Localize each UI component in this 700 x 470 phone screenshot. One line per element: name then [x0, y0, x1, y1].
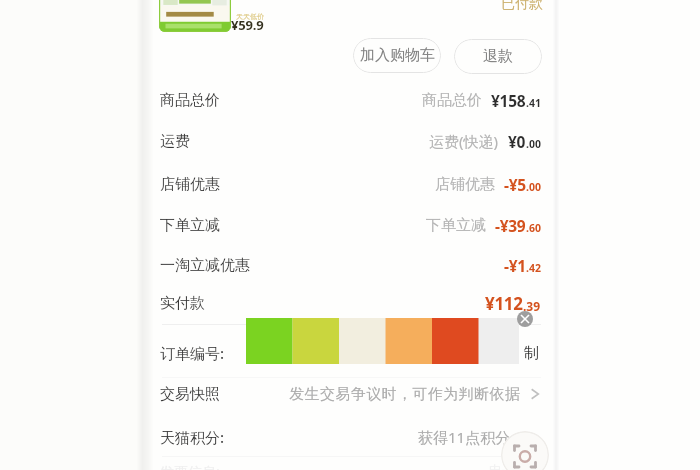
- staticText: 天猫积分:: [160, 427, 225, 447]
- staticText: -¥5: [504, 174, 526, 195]
- button[interactable]: 订单编号:: [160, 342, 541, 364]
- staticText: 订单编号:: [160, 343, 225, 363]
- staticText: 已付款: [501, 0, 543, 13]
- staticText: .42: [526, 261, 541, 275]
- staticText: 商品总价: [422, 91, 482, 110]
- staticText: 店铺优惠: [160, 175, 220, 194]
- button[interactable]: 下单立减: [160, 213, 541, 237]
- staticText: 发票信息:: [160, 462, 220, 470]
- staticText: ¥112: [485, 292, 523, 315]
- staticText: 交易快照: [160, 385, 220, 404]
- button[interactable]: 一淘立减优惠: [160, 253, 541, 277]
- button[interactable]: 商品总价: [160, 88, 541, 112]
- staticText: 电子发票: [489, 462, 541, 470]
- staticText: 下单立减: [426, 216, 486, 235]
- button[interactable]: 实付款: [160, 291, 541, 315]
- staticText: 加入购物车: [360, 46, 435, 65]
- button[interactable]: [159, 0, 231, 32]
- staticText: ¥0: [508, 131, 526, 152]
- staticText: .41: [526, 96, 541, 110]
- staticText: .00: [526, 137, 541, 151]
- staticText: 实付款: [160, 294, 205, 313]
- button[interactable]: 天猫积分:: [160, 426, 541, 448]
- staticText: 一淘立减优惠: [160, 256, 250, 275]
- staticText: 获得11点积分: [418, 427, 511, 447]
- staticText: 店铺优惠: [435, 175, 495, 194]
- button[interactable]: Close: [517, 311, 533, 327]
- staticText: 商品总价: [160, 91, 220, 110]
- staticText: .60: [526, 221, 541, 235]
- button[interactable]: 加入购物车: [353, 38, 441, 73]
- staticText: ¥59.9: [231, 16, 264, 34]
- staticText: .00: [526, 180, 541, 194]
- staticText: 天天低价: [236, 12, 264, 21]
- staticText: 下单立减: [160, 216, 220, 235]
- staticText: .39: [523, 298, 541, 314]
- staticText: 运费: [160, 132, 190, 151]
- staticText: 发生交易争议时，可作为判断依据: [289, 385, 520, 404]
- staticText: -¥1: [504, 255, 526, 276]
- button[interactable]: 运费: [160, 129, 541, 153]
- button[interactable]: Scan: [501, 431, 549, 470]
- staticText: 退款: [483, 47, 513, 66]
- staticText: ¥158: [491, 90, 526, 111]
- button[interactable]: 店铺优惠: [160, 172, 541, 196]
- staticText: 制: [524, 344, 539, 363]
- button[interactable]: 退款: [454, 39, 542, 74]
- staticText: 运费(快递): [429, 131, 499, 151]
- staticText: -¥39: [495, 215, 526, 236]
- button[interactable]: 交易快照: [160, 383, 541, 405]
